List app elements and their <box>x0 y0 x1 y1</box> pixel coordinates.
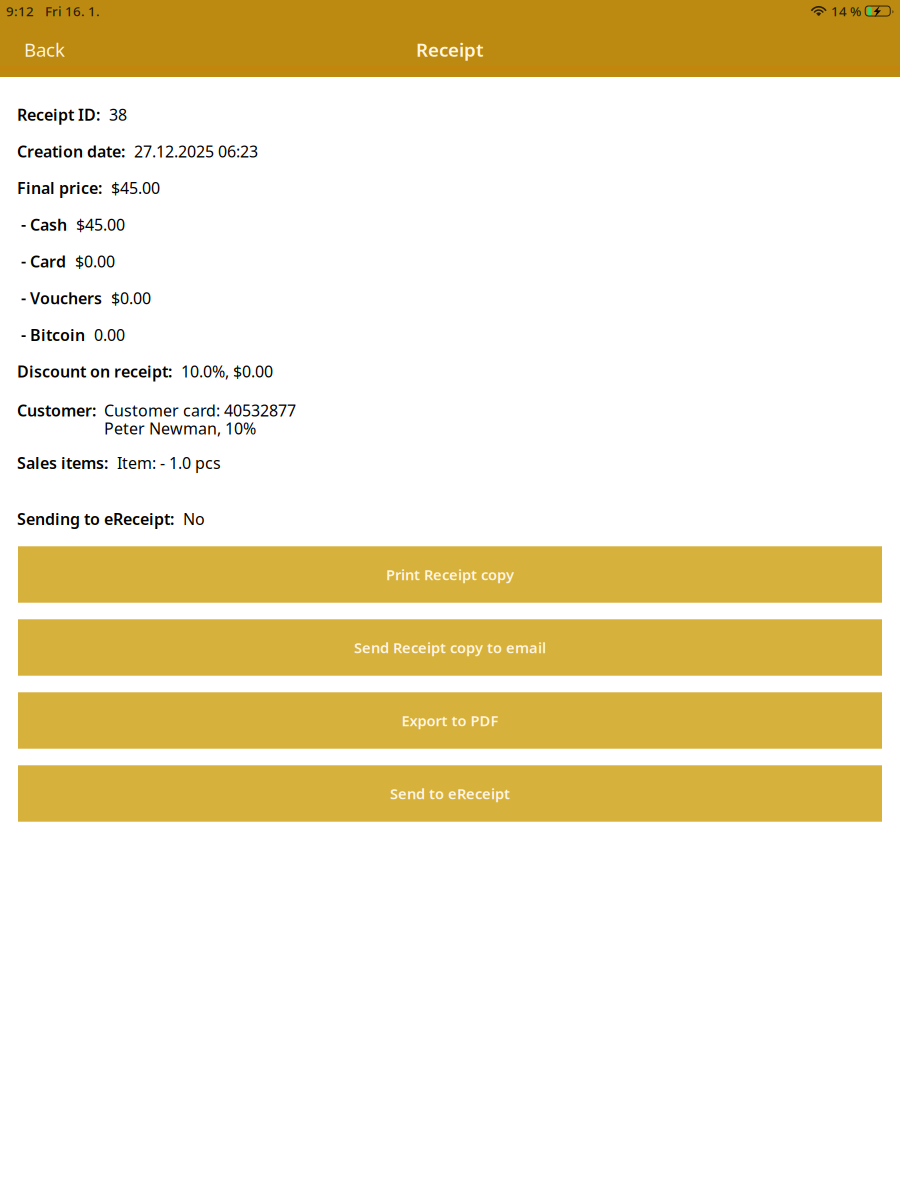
staticText: Creation date: <box>17 141 125 162</box>
staticText: $45.00 <box>111 177 160 198</box>
staticText: No <box>183 508 205 529</box>
staticText: - Bitcoin <box>17 324 85 345</box>
staticText: 27.12.2025 06:23 <box>134 141 258 162</box>
staticText: - Card <box>17 251 66 272</box>
staticText: $0.00 <box>75 251 115 272</box>
staticText: Discount on receipt: <box>17 361 172 382</box>
staticText: Final price: <box>17 177 102 198</box>
button[interactable]: Send to eReceipt <box>18 765 882 822</box>
staticText: Print Receipt copy <box>386 565 514 584</box>
button[interactable]: Print Receipt copy <box>18 546 882 603</box>
staticText: Send Receipt copy to email <box>354 638 546 657</box>
staticText: Customer card: 40532877 <box>104 400 296 421</box>
staticText: Customer: <box>17 400 96 421</box>
staticText: Receipt <box>416 37 484 62</box>
staticText: - Vouchers <box>17 287 102 309</box>
staticText: 0.00 <box>94 324 125 345</box>
staticText: $0.00 <box>111 287 151 309</box>
staticText: Back <box>24 37 65 62</box>
button[interactable]: Back <box>18 29 71 70</box>
button[interactable]: Export to PDF <box>18 692 882 749</box>
staticText: $45.00 <box>76 214 125 235</box>
staticText: 38 <box>109 104 127 125</box>
staticText: - Cash <box>17 214 67 235</box>
staticText: Sales items: <box>17 452 108 473</box>
staticText: 10.0%, $0.00 <box>181 361 273 382</box>
staticText: Sending to eReceipt: <box>17 508 174 529</box>
staticText: Item: - 1.0 pcs <box>117 452 221 473</box>
staticText: 14 % <box>831 2 861 20</box>
staticText: Fri 16. 1. <box>45 2 100 20</box>
staticText: Peter Newman, 10% <box>104 418 256 439</box>
button[interactable]: Send Receipt copy to email <box>18 619 882 676</box>
staticText: Send to eReceipt <box>390 784 510 803</box>
staticText: Export to PDF <box>401 711 498 730</box>
staticText: Receipt ID: <box>17 104 100 125</box>
staticText: 9:12 <box>6 2 34 20</box>
